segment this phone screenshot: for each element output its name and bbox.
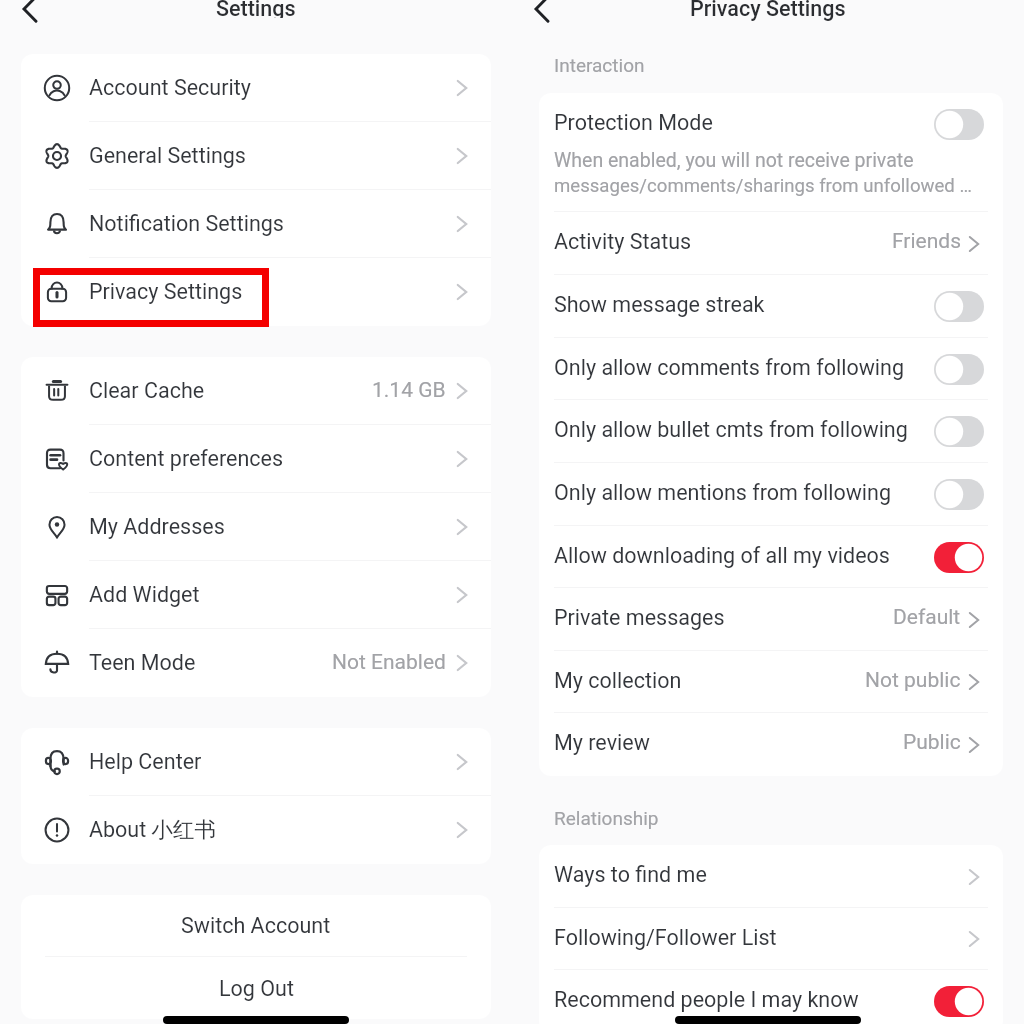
staticText: Default <box>893 605 961 630</box>
staticText: Add Widget <box>89 582 455 607</box>
button[interactable]: Clear Cache <box>21 357 491 425</box>
button[interactable]: Recommend people I may know <box>934 986 984 1017</box>
staticText: messages/comments/sharings from unfollow… <box>554 175 972 197</box>
staticText: Clear Cache <box>89 378 372 403</box>
staticText: My collection <box>554 668 865 693</box>
button[interactable]: Add Widget <box>21 561 491 629</box>
staticText: About 小红书 <box>89 816 455 843</box>
button[interactable]: Back <box>512 0 556 44</box>
button[interactable]: Following/Follower List <box>539 908 1003 970</box>
button[interactable]: About 小红书 <box>21 796 491 864</box>
button[interactable]: My collection <box>539 651 1003 713</box>
button[interactable]: Allow downloading of all my videos <box>539 526 1003 588</box>
button[interactable]: Back <box>0 0 44 22</box>
button[interactable]: My review <box>539 713 1003 776</box>
button[interactable]: Private messages <box>539 588 1003 651</box>
button[interactable]: Teen Mode <box>21 629 491 697</box>
staticText: Ways to find me <box>554 862 967 887</box>
button[interactable]: Only allow mentions from following <box>934 479 984 510</box>
button[interactable]: Protection Mode <box>539 93 1003 212</box>
staticText: Activity Status <box>554 229 892 254</box>
button[interactable]: Recommend people I may know <box>539 970 1003 1024</box>
button[interactable]: Help Center <box>21 728 491 796</box>
staticText: Only allow mentions from following <box>554 480 934 505</box>
staticText: Account Security <box>89 75 455 100</box>
button[interactable]: Show message streak <box>539 275 1003 338</box>
button[interactable]: My Addresses <box>21 493 491 561</box>
staticText: Switch Account <box>181 913 331 938</box>
button[interactable]: Account Security <box>21 54 491 122</box>
staticText: Teen Mode <box>89 650 332 675</box>
staticText: Following/Follower List <box>554 925 967 950</box>
staticText: When enabled, you will not receive priva… <box>554 149 914 172</box>
staticText: Not Enabled <box>332 650 446 675</box>
button[interactable]: Only allow bullet cmts from following <box>539 400 1003 463</box>
button[interactable]: Only allow comments from following <box>934 354 984 385</box>
button[interactable]: General Settings <box>21 122 491 190</box>
button[interactable]: Only allow mentions from following <box>539 463 1003 526</box>
staticText: Not public <box>865 668 961 693</box>
button[interactable]: Switch Account <box>21 895 491 956</box>
staticText: My review <box>554 730 903 755</box>
staticText: Friends <box>892 229 961 254</box>
staticText: Public <box>903 730 961 755</box>
button[interactable]: Activity Status <box>539 212 1003 275</box>
staticText: Privacy Settings <box>89 279 455 304</box>
button[interactable]: Protection Mode <box>934 109 984 140</box>
staticText: Only allow bullet cmts from following <box>554 417 934 442</box>
staticText: Allow downloading of all my videos <box>554 543 934 568</box>
button[interactable]: Log Out <box>21 957 491 1019</box>
staticText: Notification Settings <box>89 211 455 236</box>
staticText: Relationship <box>554 807 659 829</box>
button[interactable]: Show message streak <box>934 291 984 322</box>
staticText: Only allow comments from following <box>554 355 934 380</box>
staticText: My Addresses <box>89 514 455 539</box>
button[interactable]: Only allow bullet cmts from following <box>934 416 984 447</box>
staticText: Recommend people I may know <box>554 987 934 1012</box>
staticText: Interaction <box>554 54 645 76</box>
staticText: Private messages <box>554 605 893 630</box>
staticText: Protection Mode <box>554 110 713 135</box>
button[interactable]: Content preferences <box>21 425 491 493</box>
staticText: Help Center <box>89 749 455 774</box>
button[interactable]: Only allow comments from following <box>539 338 1003 400</box>
staticText: Settings <box>216 0 296 18</box>
staticText: Log Out <box>219 976 294 1001</box>
staticText: Content preferences <box>89 446 455 471</box>
staticText: General Settings <box>89 143 455 168</box>
button[interactable]: Allow downloading of all my videos <box>934 542 984 573</box>
staticText: 1.14 GB <box>372 378 446 403</box>
staticText: Privacy Settings <box>690 0 846 21</box>
button[interactable]: Notification Settings <box>21 190 491 258</box>
staticText: Show message streak <box>554 292 934 317</box>
button[interactable]: Ways to find me <box>539 845 1003 908</box>
button[interactable]: Privacy Settings <box>21 258 491 326</box>
